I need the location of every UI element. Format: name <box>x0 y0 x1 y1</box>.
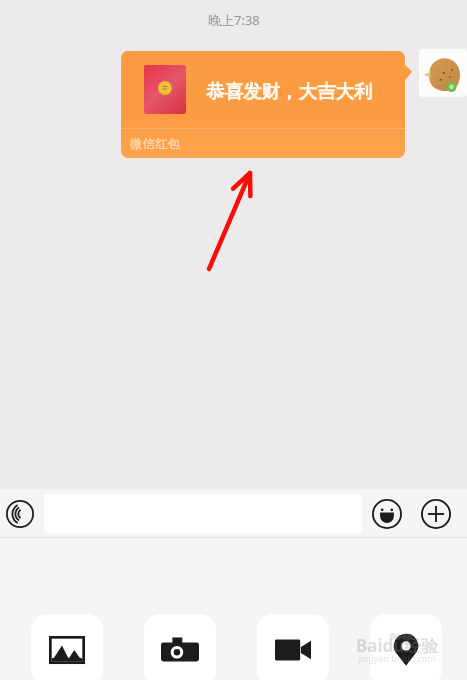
button[interactable]: Photos <box>31 614 103 680</box>
button[interactable]: 恭喜发财，大吉大利 <box>121 51 405 158</box>
button[interactable]: Camera <box>144 614 216 680</box>
button[interactable]: More <box>420 498 452 530</box>
button[interactable]: Emoji <box>371 498 403 530</box>
button[interactable]: Contact avatar <box>419 49 467 97</box>
button[interactable]: Location <box>370 614 442 680</box>
staticText: jingyan.baidu.com <box>358 652 436 664</box>
staticText: 恭喜发财，大吉大利 <box>206 80 373 103</box>
staticText: 微信红包 <box>130 136 180 152</box>
staticText: Baidu经验 <box>356 634 439 657</box>
staticText: 晚上7:38 <box>208 11 260 29</box>
button[interactable]: Voice message <box>5 499 35 529</box>
button[interactable]: Video call <box>257 614 329 680</box>
